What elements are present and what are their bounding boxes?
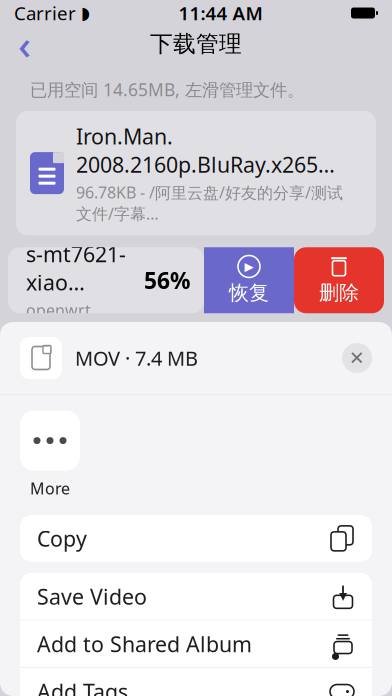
staticText: ✕: [349, 347, 365, 369]
staticText: 下载管理: [150, 30, 242, 58]
button[interactable]: 删除: [294, 247, 384, 313]
button[interactable]: Iron.Man.2008.2160p.BluRay.x265…: [16, 111, 376, 235]
button[interactable]: Close: [342, 343, 372, 373]
button[interactable]: Add Tags: [20, 668, 372, 696]
button[interactable]: More: [20, 411, 80, 499]
staticText: Iron.Man.2008.2160p.BluRay.x265…: [76, 122, 335, 179]
button[interactable]: ▶: [204, 247, 294, 313]
staticText: More: [30, 478, 70, 499]
staticText: MOV · 7.4 MB: [75, 345, 198, 371]
button[interactable]: 1683541389495.MOV: [16, 325, 376, 400]
staticText: 1683541389495.MOV: [76, 336, 286, 365]
staticText: ▼: [339, 590, 347, 602]
staticText: s-mt7621-xiao…: [26, 240, 126, 296]
staticText: 已用空间 14.65MB, 左滑管理文件。: [30, 78, 304, 101]
button[interactable]: Save Video: [20, 573, 372, 620]
staticText: ◗: [81, 3, 90, 23]
staticText: 恢复: [229, 280, 269, 305]
staticText: Carrier: [14, 1, 76, 25]
staticText: 96.78KB - /阿里云盘/好友的分享/测试文件/字幕…: [76, 182, 343, 224]
staticText: ‹: [18, 17, 31, 70]
staticText: Add to Shared Album: [37, 630, 252, 658]
button[interactable]: Copy: [20, 515, 372, 562]
staticText: Save Video: [37, 582, 147, 610]
staticText: 11:44 AM: [178, 1, 262, 25]
staticText: Copy: [37, 524, 87, 552]
button[interactable]: Add to Shared Album: [20, 620, 372, 667]
staticText: openwrt: [26, 299, 91, 321]
staticText: 删除: [319, 280, 359, 305]
staticText: 56%: [144, 265, 190, 295]
staticText: Add Tags: [37, 677, 128, 696]
button[interactable]: Back: [0, 24, 60, 64]
staticText: ▶: [244, 260, 253, 273]
